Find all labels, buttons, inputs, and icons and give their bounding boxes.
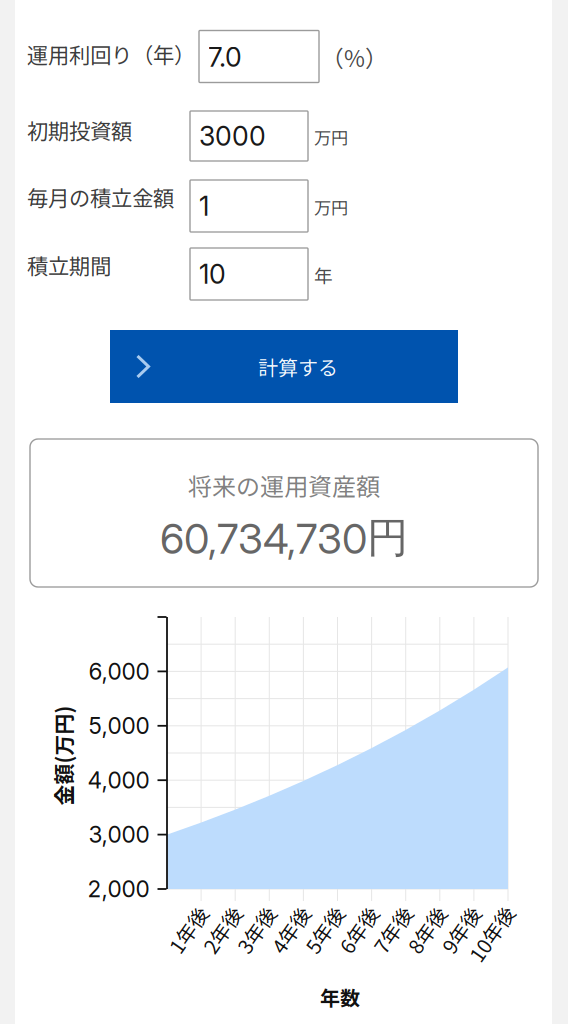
staticText: （%） [321, 41, 388, 73]
staticText: 8年後 [401, 915, 452, 944]
staticText: 万円 [314, 124, 348, 150]
button[interactable]: 計算する [110, 330, 458, 403]
staticText: 4,000 [87, 766, 149, 794]
staticText: 運用利回り（年） [27, 39, 195, 69]
staticText: 1年後 [163, 915, 214, 944]
staticText: 初期投資額 [27, 115, 132, 145]
staticText: 6年後 [333, 915, 384, 944]
staticText: 9年後 [435, 915, 486, 944]
staticText: 7年後 [367, 915, 418, 944]
staticText: 3,000 [88, 821, 149, 848]
staticText: 2年後 [197, 915, 248, 944]
staticText: 4年後 [265, 915, 316, 944]
staticText: 計算する [258, 352, 338, 381]
staticText: 年数 [320, 982, 360, 1011]
staticText: 年 [314, 261, 333, 288]
staticText: 金額(万円) [13, 740, 113, 770]
staticText: 60,734,730円 [160, 512, 408, 564]
staticText: 1 [199, 190, 209, 222]
staticText: 積立期間 [27, 250, 111, 280]
staticText: 将来の運用資産額 [188, 468, 380, 502]
staticText: 10 [199, 258, 226, 290]
staticText: 5年後 [299, 915, 350, 944]
staticText: 5,000 [88, 712, 149, 739]
staticText: 7.0 [208, 41, 242, 73]
staticText: 3000 [199, 120, 266, 152]
staticText: 毎月の積立金額 [27, 182, 174, 212]
staticText: 2,000 [87, 875, 149, 903]
staticText: 万円 [314, 194, 348, 220]
staticText: 10年後 [460, 919, 522, 948]
staticText: 6,000 [88, 658, 149, 685]
staticText: 3年後 [231, 915, 282, 944]
